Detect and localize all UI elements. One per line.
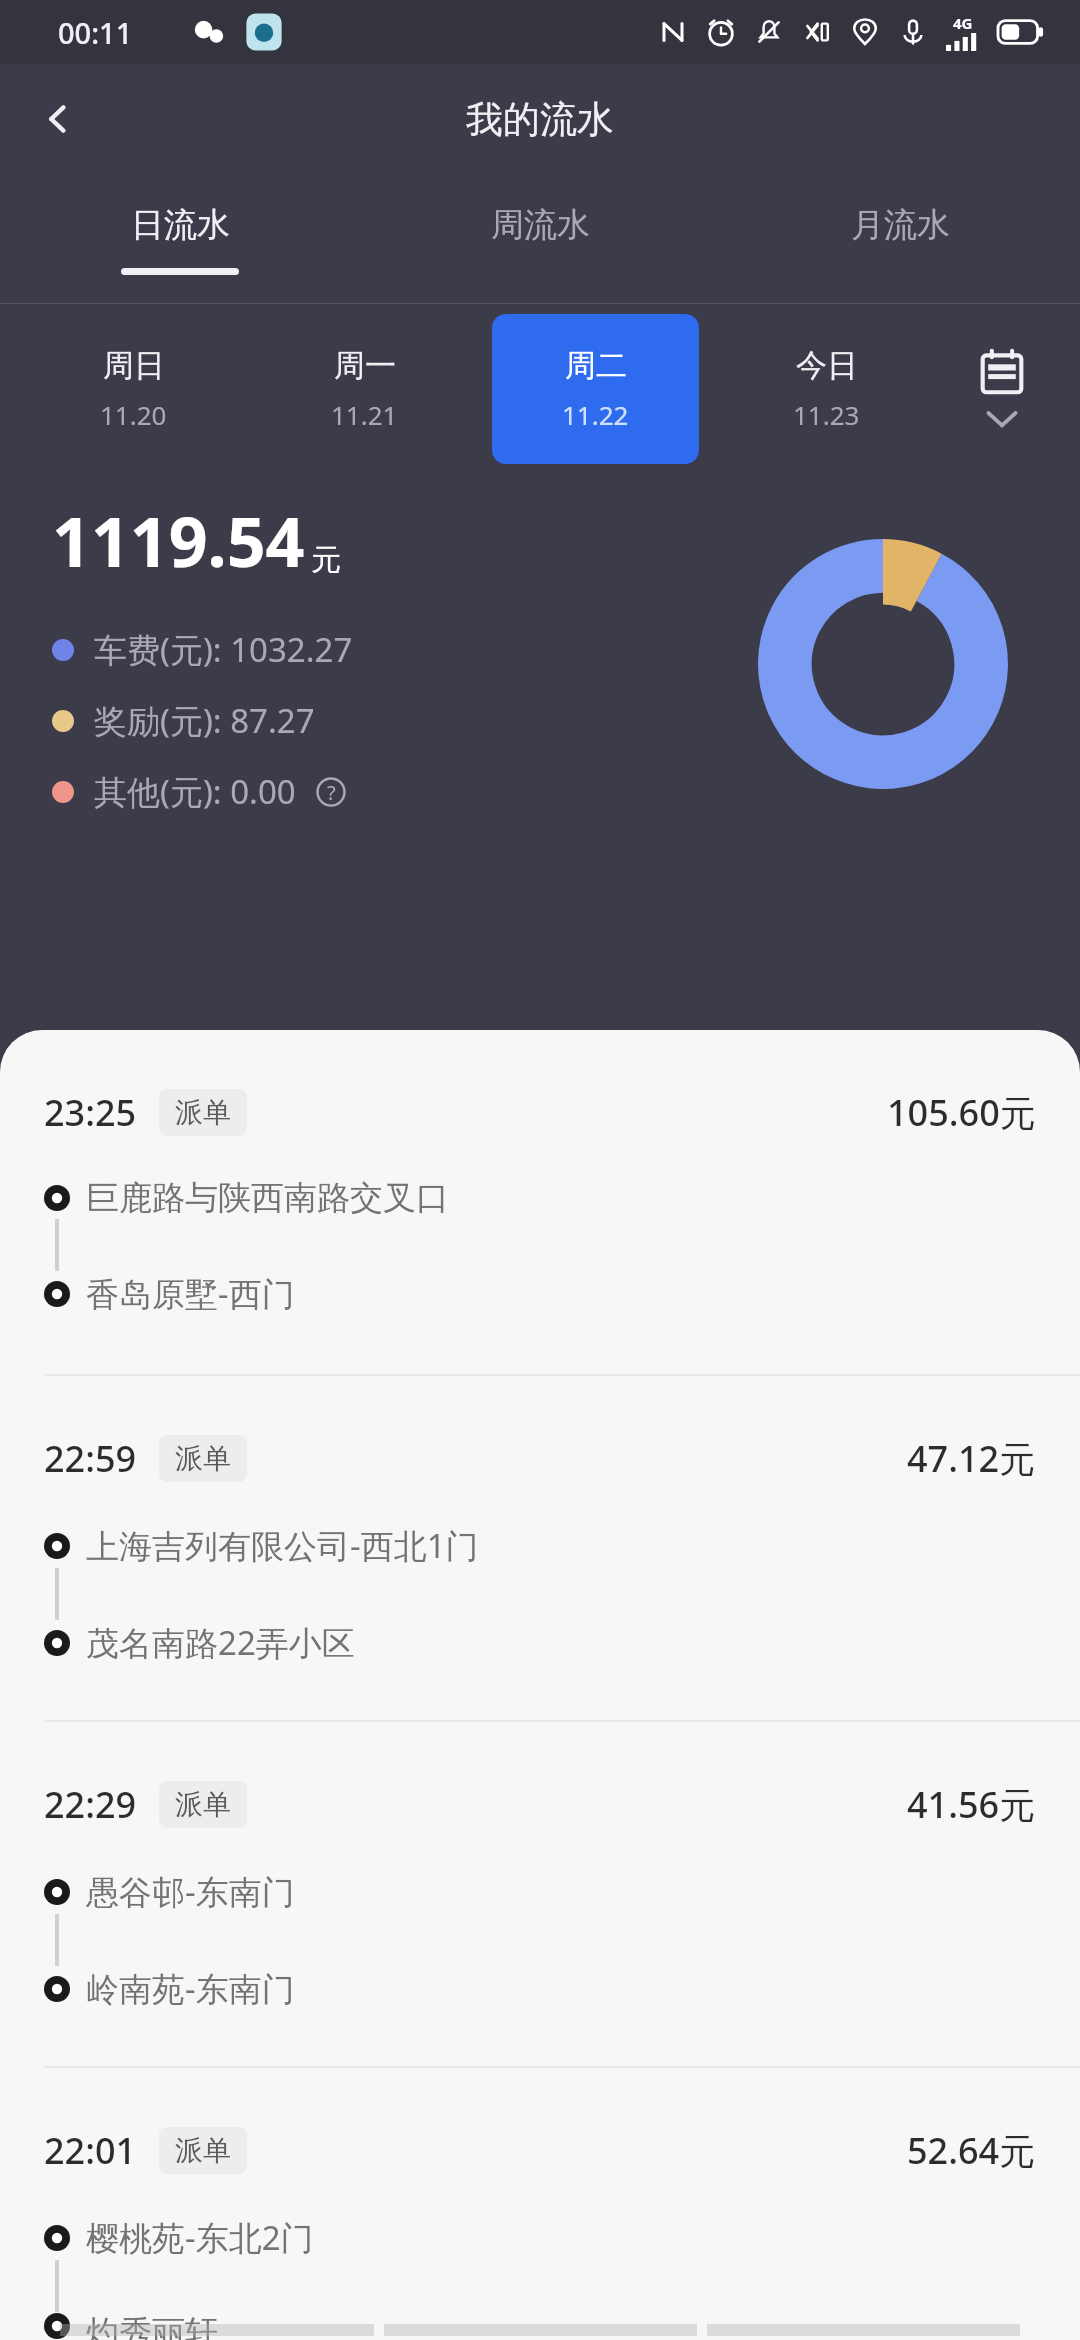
- staticText: 周一: [334, 346, 396, 385]
- staticText: 22:59: [44, 1434, 137, 1483]
- staticText: 其他(元): 0.00: [94, 769, 296, 814]
- button[interactable]: 22:29: [0, 1722, 1080, 2066]
- staticText: 周二: [565, 346, 627, 385]
- staticText: 23:25: [44, 1088, 137, 1137]
- staticText: 愚谷邨-东南门: [86, 1869, 295, 1914]
- staticText: 47.12元: [907, 1434, 1036, 1483]
- staticText: 22:29: [44, 1780, 137, 1829]
- staticText: 派单: [175, 1441, 231, 1476]
- staticText: 11.22: [562, 397, 629, 432]
- staticText: 派单: [175, 2133, 231, 2168]
- staticText: 日流水: [131, 204, 230, 246]
- staticText: 岭南苑-东南门: [86, 1966, 295, 2011]
- staticText: 茂名南路22弄小区: [86, 1620, 355, 1665]
- staticText: 灼秀丽轩: [86, 2312, 218, 2340]
- staticText: 车费(元): 1032.27: [94, 627, 353, 672]
- staticText: 元: [311, 541, 341, 579]
- button[interactable]: Help: [312, 773, 350, 811]
- staticText: 00:11: [58, 13, 133, 52]
- staticText: 上海吉列有限公司-西北1门: [86, 1523, 479, 1568]
- button[interactable]: 今日: [723, 314, 930, 464]
- staticText: 奖励(元): 87.27: [94, 698, 315, 743]
- button[interactable]: 周流水: [360, 174, 720, 304]
- button[interactable]: 月流水: [720, 174, 1080, 304]
- button[interactable]: 周日: [30, 314, 237, 464]
- button[interactable]: 日流水: [0, 174, 360, 304]
- button[interactable]: 周一: [261, 314, 468, 464]
- staticText: 香岛原墅-西门: [86, 1271, 295, 1316]
- staticText: 11.20: [100, 397, 167, 432]
- staticText: ?: [327, 779, 336, 806]
- button[interactable]: Calendar: [942, 304, 1062, 474]
- staticText: 1119.54: [52, 494, 305, 587]
- staticText: 樱桃苑-东北2门: [86, 2215, 314, 2260]
- button[interactable]: 周二: [492, 314, 699, 464]
- staticText: 派单: [175, 1095, 231, 1130]
- staticText: 周日: [103, 346, 165, 385]
- staticText: 月流水: [851, 204, 950, 246]
- staticText: 11.21: [331, 397, 398, 432]
- staticText: 派单: [175, 1787, 231, 1822]
- staticText: 41.56元: [907, 1780, 1036, 1829]
- staticText: 11.23: [793, 397, 860, 432]
- staticText: 我的流水: [466, 96, 614, 143]
- staticText: 22:01: [44, 2126, 137, 2175]
- button[interactable]: 22:59: [0, 1376, 1080, 1720]
- staticText: 今日: [796, 346, 858, 385]
- staticText: 巨鹿路与陕西南路交叉口: [86, 1177, 449, 1219]
- button[interactable]: 22:01: [0, 2068, 1080, 2340]
- staticText: 52.64元: [907, 2126, 1036, 2175]
- button[interactable]: Back: [22, 83, 94, 155]
- staticText: 105.60元: [887, 1088, 1036, 1137]
- staticText: 4G: [953, 13, 973, 33]
- button[interactable]: 23:25: [0, 1030, 1080, 1374]
- staticText: 周流水: [491, 204, 590, 246]
